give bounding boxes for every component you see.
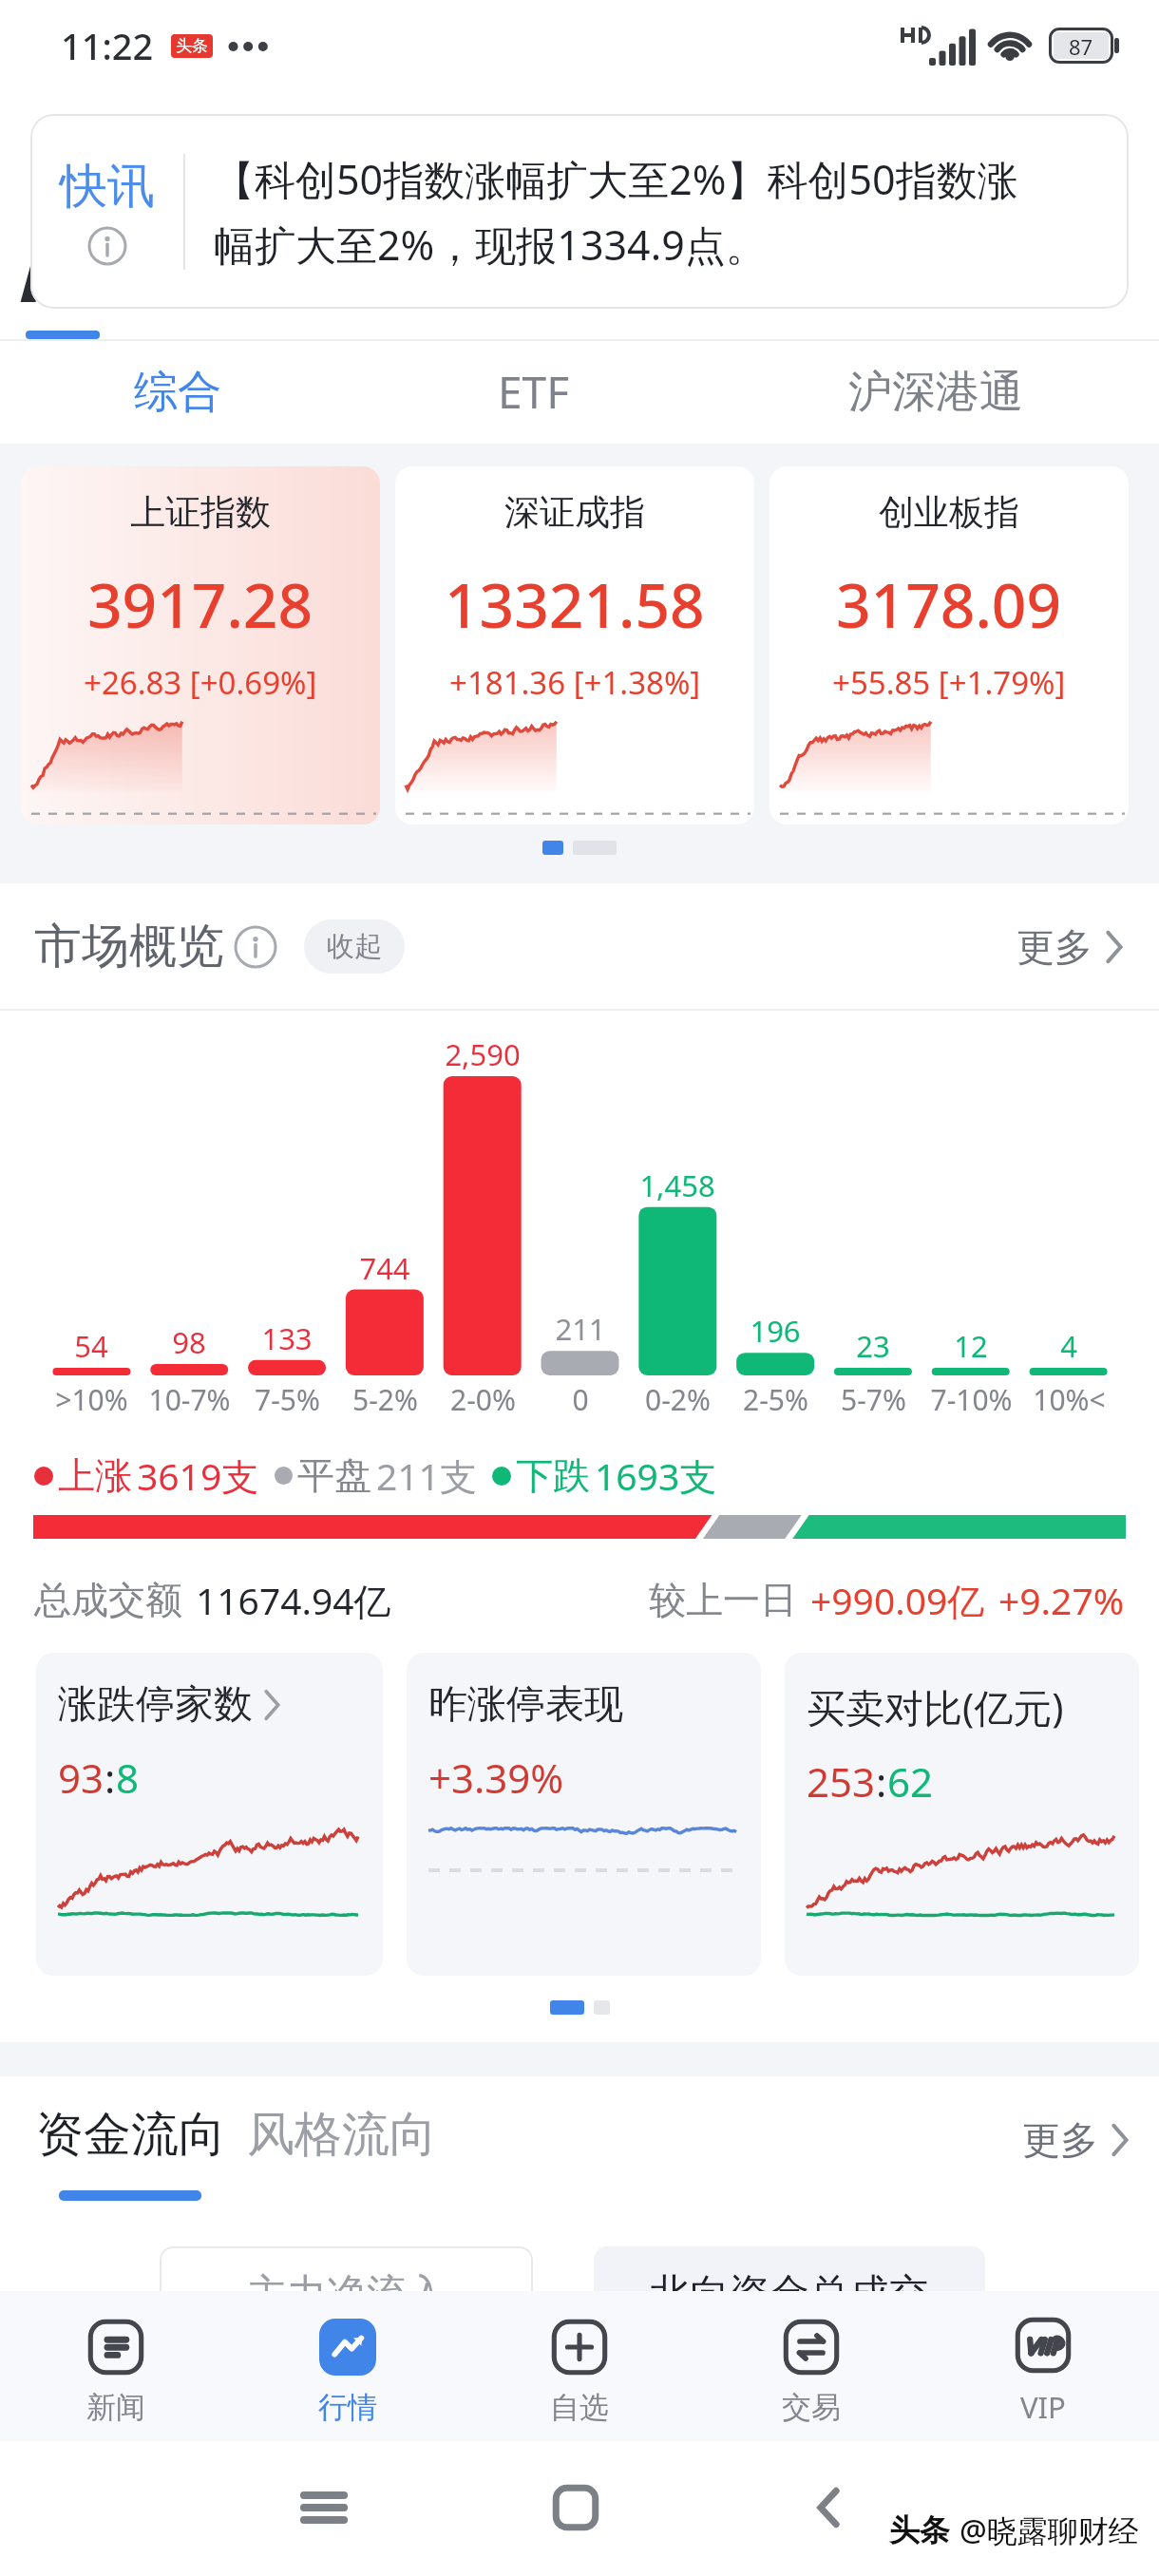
staticText: : <box>876 1754 887 1809</box>
staticText: 风格流向 <box>247 2105 437 2165</box>
staticText: 93 <box>58 1751 104 1805</box>
staticText: +181.36 [+1.38%] <box>449 661 701 704</box>
staticText: 11674.94亿 <box>196 1575 391 1624</box>
button[interactable]: 自选 <box>464 2291 695 2441</box>
staticText: 综合 <box>134 365 221 420</box>
button[interactable]: ETF <box>448 340 619 444</box>
staticText: 沪深港通 <box>848 365 1023 420</box>
staticText: 13321.58 <box>445 563 705 646</box>
button[interactable]: 买卖对比(亿元) <box>785 1653 1139 1976</box>
staticText: : <box>104 1751 116 1805</box>
staticText: 12 <box>954 1326 988 1366</box>
staticText: 2,590 <box>445 1034 521 1074</box>
staticText: 744 <box>359 1248 410 1288</box>
staticText: 211支 <box>376 1450 477 1501</box>
staticText: +3.39% <box>428 1751 564 1805</box>
staticText: 昨涨停表现 <box>428 1680 623 1730</box>
button[interactable]: 更多 <box>1016 923 1125 971</box>
button[interactable]: Back <box>796 2475 861 2540</box>
button[interactable]: Home <box>543 2475 608 2540</box>
staticText: 快讯 <box>60 157 155 217</box>
staticText: 深证成指 <box>504 490 645 535</box>
staticText: ETF <box>498 362 570 422</box>
staticText: 5-7% <box>841 1380 906 1419</box>
staticText: 涨跌停家数 <box>58 1680 253 1730</box>
staticText: +9.27% <box>998 1575 1125 1624</box>
staticText: 行情 <box>318 2389 377 2426</box>
staticText: 0 <box>572 1380 589 1419</box>
button[interactable]: 新闻 <box>0 2291 232 2441</box>
staticText: 196 <box>750 1311 801 1351</box>
button[interactable]: Recent apps <box>292 2475 356 2540</box>
staticText: 创业板指 <box>879 490 1019 535</box>
staticText: 头条 <box>889 2511 950 2549</box>
staticText: 交易 <box>782 2389 841 2426</box>
staticText: 10-7% <box>148 1380 231 1419</box>
staticText: 253 <box>807 1754 876 1809</box>
staticText: 主力净流入 <box>247 2269 446 2320</box>
button[interactable]: 深证成指 <box>395 466 754 824</box>
staticText: 8 <box>116 1751 140 1805</box>
staticText: 自选 <box>550 2389 609 2426</box>
button[interactable]: 交易 <box>695 2291 927 2441</box>
staticText: 买卖对比(亿元) <box>807 1680 1064 1733</box>
staticText: 133 <box>261 1318 313 1358</box>
staticText: 1693支 <box>595 1450 717 1501</box>
staticText: 较上一日 <box>649 1577 797 1623</box>
button[interactable]: 上证指数 <box>21 466 380 824</box>
staticText: 11:22 <box>61 21 154 70</box>
button[interactable]: 资金流向 <box>36 2099 226 2170</box>
staticText: 下跌 <box>516 1452 590 1499</box>
staticText: 98 <box>172 1322 206 1362</box>
button[interactable]: 昨涨停表现 <box>407 1653 761 1976</box>
staticText: 平盘 <box>297 1452 371 1499</box>
staticText: 0-2% <box>645 1380 711 1419</box>
staticText: 4 <box>1060 1326 1077 1366</box>
button[interactable]: 行情 <box>232 2291 464 2441</box>
staticText: +55.85 [+1.79%] <box>832 661 1066 704</box>
staticText: 3619支 <box>137 1450 259 1501</box>
staticText: 1,458 <box>639 1165 715 1205</box>
staticText: 资金流向 <box>36 2105 226 2165</box>
staticText: VIP <box>1020 2387 1066 2427</box>
button[interactable]: 收起 <box>304 919 405 974</box>
staticText: 更多 <box>1022 2116 1098 2164</box>
staticText: 5-2% <box>352 1380 418 1419</box>
staticText: 2-0% <box>450 1380 516 1419</box>
staticText: 2-5% <box>743 1380 808 1419</box>
staticText: 头条 <box>176 36 208 56</box>
staticText: 3917.28 <box>87 563 313 646</box>
staticText: 市场概览 <box>34 917 224 976</box>
staticText: 87 <box>1069 32 1093 59</box>
button[interactable]: 涨跌停家数 <box>36 1653 383 1976</box>
button[interactable]: VIP <box>927 2291 1159 2441</box>
button[interactable]: 沪深港通 <box>822 340 1050 444</box>
button[interactable]: 更多 <box>1022 2116 1130 2164</box>
staticText: 7-5% <box>255 1380 320 1419</box>
button[interactable]: 北向资金总成交 <box>594 2246 985 2341</box>
button[interactable]: 快讯 <box>30 114 1129 309</box>
staticText: +990.09亿 <box>810 1575 985 1624</box>
button[interactable]: 创业板指 <box>769 466 1129 824</box>
staticText: 收起 <box>327 929 382 964</box>
staticText: 10%< <box>1033 1380 1106 1419</box>
staticText: 新闻 <box>86 2389 145 2426</box>
staticText: 【科创50指数涨幅扩大至2%】科创50指数涨幅扩大至2%，现报1334.9点。 <box>214 151 1045 273</box>
staticText: 总成交额 <box>34 1577 182 1623</box>
staticText: 北向资金总成交 <box>650 2269 929 2320</box>
staticText: +26.83 [+0.69%] <box>84 661 317 704</box>
button[interactable]: 主力净流入 <box>160 2246 533 2341</box>
staticText: 3178.09 <box>836 563 1062 646</box>
staticText: 上证指数 <box>130 490 271 535</box>
staticText: 211 <box>555 1309 606 1349</box>
staticText: >10% <box>55 1380 128 1419</box>
staticText: 更多 <box>1016 923 1092 971</box>
staticText: 23 <box>856 1326 890 1366</box>
staticText: @晓露聊财经 <box>959 2510 1139 2551</box>
staticText: 上涨 <box>58 1452 132 1499</box>
button[interactable]: 综合 <box>92 340 263 444</box>
button[interactable]: 风格流向 <box>247 2099 437 2170</box>
staticText: 54 <box>74 1326 108 1366</box>
staticText: 62 <box>887 1754 934 1809</box>
staticText: 7-10% <box>930 1380 1013 1419</box>
